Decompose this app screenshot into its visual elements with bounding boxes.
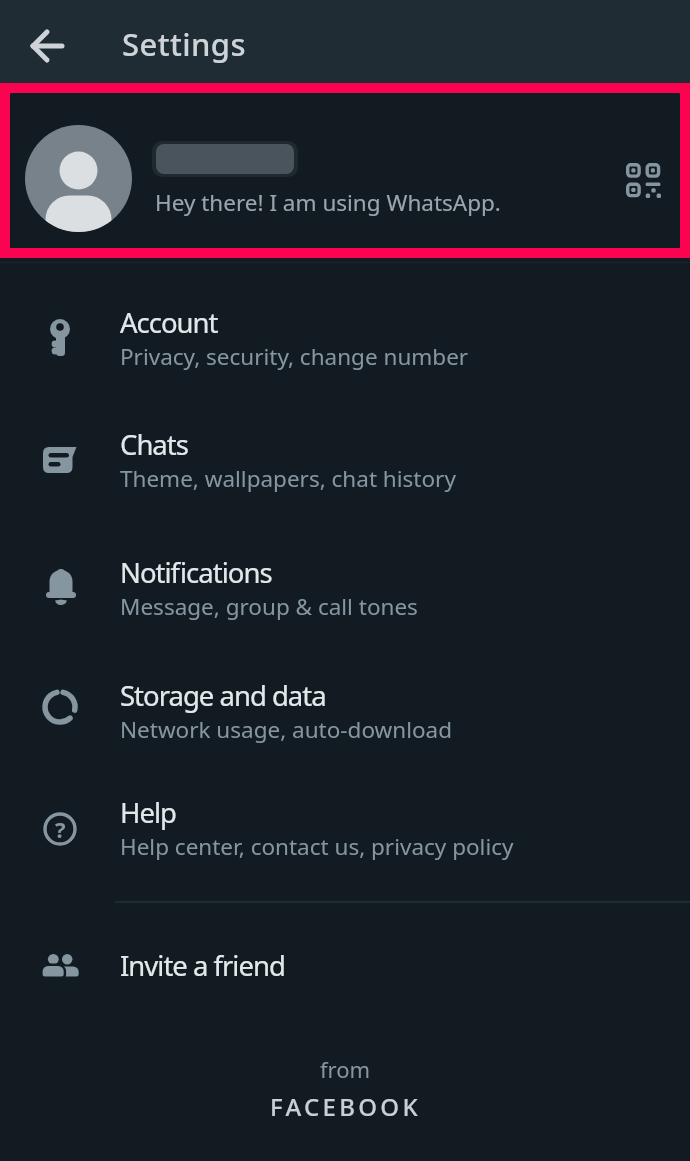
staticText: Notifications	[120, 554, 272, 591]
button[interactable]: Invite a friend	[0, 921, 690, 1043]
staticText: FACEBOOK	[270, 1090, 421, 1123]
button[interactable]	[19, 18, 75, 74]
staticText: Hey there! I am using WhatsApp.	[155, 187, 501, 218]
staticText: Network usage, auto-download	[120, 714, 453, 745]
staticText: Settings	[122, 23, 246, 65]
button[interactable]: Hey there! I am using WhatsApp.	[0, 83, 690, 258]
staticText: Chats	[120, 426, 188, 463]
button[interactable]	[614, 151, 674, 211]
staticText: Theme, wallpapers, chat history	[120, 463, 456, 494]
button[interactable]: Chats	[0, 402, 690, 524]
staticText: Help	[120, 794, 176, 831]
button[interactable]: Storage and data	[0, 653, 690, 775]
staticText: Message, group & call tones	[120, 591, 418, 622]
button[interactable]: ?	[0, 770, 690, 892]
staticText: Privacy, security, change number	[120, 341, 469, 372]
staticText: Help center, contact us, privacy policy	[120, 831, 514, 862]
staticText: Account	[120, 304, 218, 341]
staticText: from	[320, 1054, 371, 1084]
staticText: Storage and data	[120, 677, 326, 714]
button[interactable]: Account	[0, 280, 690, 402]
staticText: Invite a friend	[120, 947, 285, 984]
staticText: ?	[55, 814, 66, 844]
button[interactable]: Notifications	[0, 530, 690, 652]
